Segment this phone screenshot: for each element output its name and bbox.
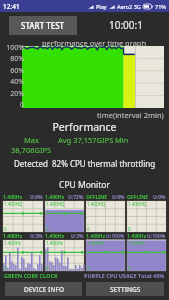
button[interactable]: OFFLINE — [86, 194, 125, 232]
staticText: 1.400HQ — [128, 201, 147, 207]
staticText: DEVICE INFO — [24, 285, 64, 294]
staticText: 80% — [10, 54, 24, 64]
staticText: 38,706GIPS — [11, 145, 52, 155]
staticText: Performance — [0, 120, 169, 134]
staticText: 1.400HQ — [4, 201, 23, 207]
staticText: GREEN CORE CLOCK — [4, 272, 58, 279]
staticText: U:0% — [153, 194, 166, 201]
button[interactable]: SETTINGS — [86, 282, 164, 296]
button[interactable]: 1.400Hz — [127, 233, 166, 271]
staticText: Aero2 3G — [117, 3, 141, 10]
staticText: PURPLE CPU USAGE Total 40% — [84, 272, 165, 279]
staticText: OFFLINE — [86, 194, 108, 201]
staticText: 20% — [10, 89, 24, 99]
staticText: U:100% — [147, 233, 166, 240]
staticText: 1.400Hz — [45, 194, 65, 201]
staticText: START TEST — [21, 20, 65, 31]
staticText: 0 — [128, 265, 131, 271]
button[interactable]: OFFLINE — [127, 194, 166, 232]
staticText: 1.400Hz — [46, 240, 63, 246]
staticText: 1.400HQ — [87, 201, 106, 207]
staticText: 0 — [4, 265, 7, 271]
staticText: 1.400Hz — [127, 233, 147, 240]
staticText: U:3% — [30, 233, 43, 240]
staticText: 0 — [46, 265, 49, 271]
staticText: 1.400Hz — [45, 233, 65, 240]
staticText: 1.400Hz — [3, 194, 23, 201]
staticText: 1.400Hz — [86, 233, 106, 240]
staticText: U:3% — [71, 233, 84, 240]
staticText: 10:00:1 — [109, 18, 143, 32]
button[interactable]: 1.400Hz — [45, 233, 84, 271]
button[interactable]: 1.400Hz — [3, 233, 43, 271]
staticText: 1.400HQ — [46, 201, 65, 207]
staticText: 60% — [10, 66, 24, 76]
staticText: 0 — [46, 226, 49, 232]
staticText: 100% — [6, 43, 24, 53]
button[interactable]: 1.400Hz — [86, 233, 125, 271]
staticText: 0 — [87, 226, 90, 232]
staticText: U:0% — [112, 194, 125, 201]
staticText: 1.400Hz — [87, 240, 104, 246]
button[interactable]: START TEST — [9, 16, 77, 35]
staticText: OFFLINE — [127, 194, 149, 201]
staticText: Avg 37,157GIPS — [58, 135, 114, 145]
button[interactable]: DEVICE INFO — [5, 282, 82, 296]
staticText: 0 — [4, 226, 7, 232]
staticText: performance over time graph — [42, 38, 147, 48]
button[interactable]: 1.400Hz — [45, 194, 84, 232]
staticText: U:0% — [30, 194, 43, 201]
staticText: 0 — [19, 100, 24, 110]
staticText: U:100% — [106, 233, 125, 240]
staticText: 1.400Hz — [128, 240, 145, 246]
staticText: 71% — [155, 3, 166, 10]
staticText: 1.400Hz — [3, 233, 23, 240]
staticText: time(interval 2min) — [97, 110, 164, 120]
staticText: 12:41 — [3, 2, 20, 11]
staticText: 1.400Hz — [4, 240, 21, 246]
staticText: 0 — [128, 226, 131, 232]
staticText: Min 31,429GIPS — [115, 135, 165, 145]
staticText: U:72% — [68, 194, 84, 201]
staticText: 40% — [10, 77, 24, 87]
staticText: SETTINGS — [110, 285, 141, 294]
staticText: 0 — [87, 265, 90, 271]
staticText: CPU Monitor — [0, 179, 169, 191]
staticText: Play — [96, 3, 107, 10]
staticText: Max — [24, 135, 39, 145]
staticText: Detected 82% CPU thermal throttling — [0, 158, 169, 169]
button[interactable]: 1.400Hz — [3, 194, 43, 232]
